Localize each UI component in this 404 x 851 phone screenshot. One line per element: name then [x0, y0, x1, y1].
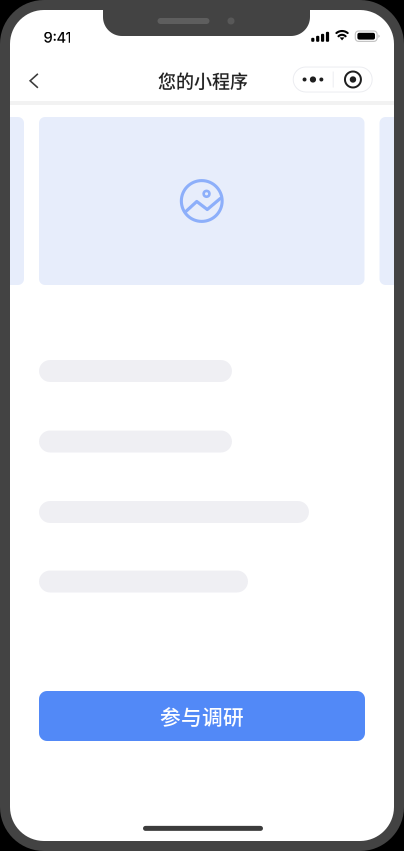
staticText: 您的小程序	[158, 67, 248, 94]
staticText: 参与调研	[160, 701, 244, 731]
staticText: 9:41	[43, 28, 71, 46]
button[interactable]: Back	[12, 59, 56, 103]
button[interactable]: More options and close mini program	[293, 67, 372, 92]
button[interactable]: 参与调研	[39, 691, 365, 741]
